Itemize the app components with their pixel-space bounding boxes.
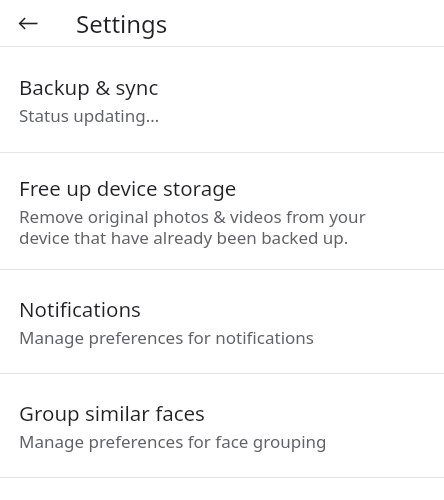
staticText: Backup & sync xyxy=(19,73,159,101)
button[interactable]: Back xyxy=(10,5,46,41)
staticText: Notifications xyxy=(19,295,141,323)
button[interactable]: Notifications xyxy=(0,270,444,373)
staticText: Settings xyxy=(76,7,168,40)
staticText: Free up device storage xyxy=(19,174,237,202)
button[interactable]: Free up device storage xyxy=(0,153,444,269)
staticText: Manage preferences for notifications xyxy=(19,326,314,349)
staticText: Status updating… xyxy=(19,104,160,127)
staticText: Manage preferences for face grouping xyxy=(19,430,327,453)
button[interactable]: Backup & sync xyxy=(0,47,444,152)
staticText: Group similar faces xyxy=(19,399,205,427)
staticText: Remove original photos & videos from you… xyxy=(19,205,418,249)
button[interactable]: Group similar faces xyxy=(0,374,444,477)
